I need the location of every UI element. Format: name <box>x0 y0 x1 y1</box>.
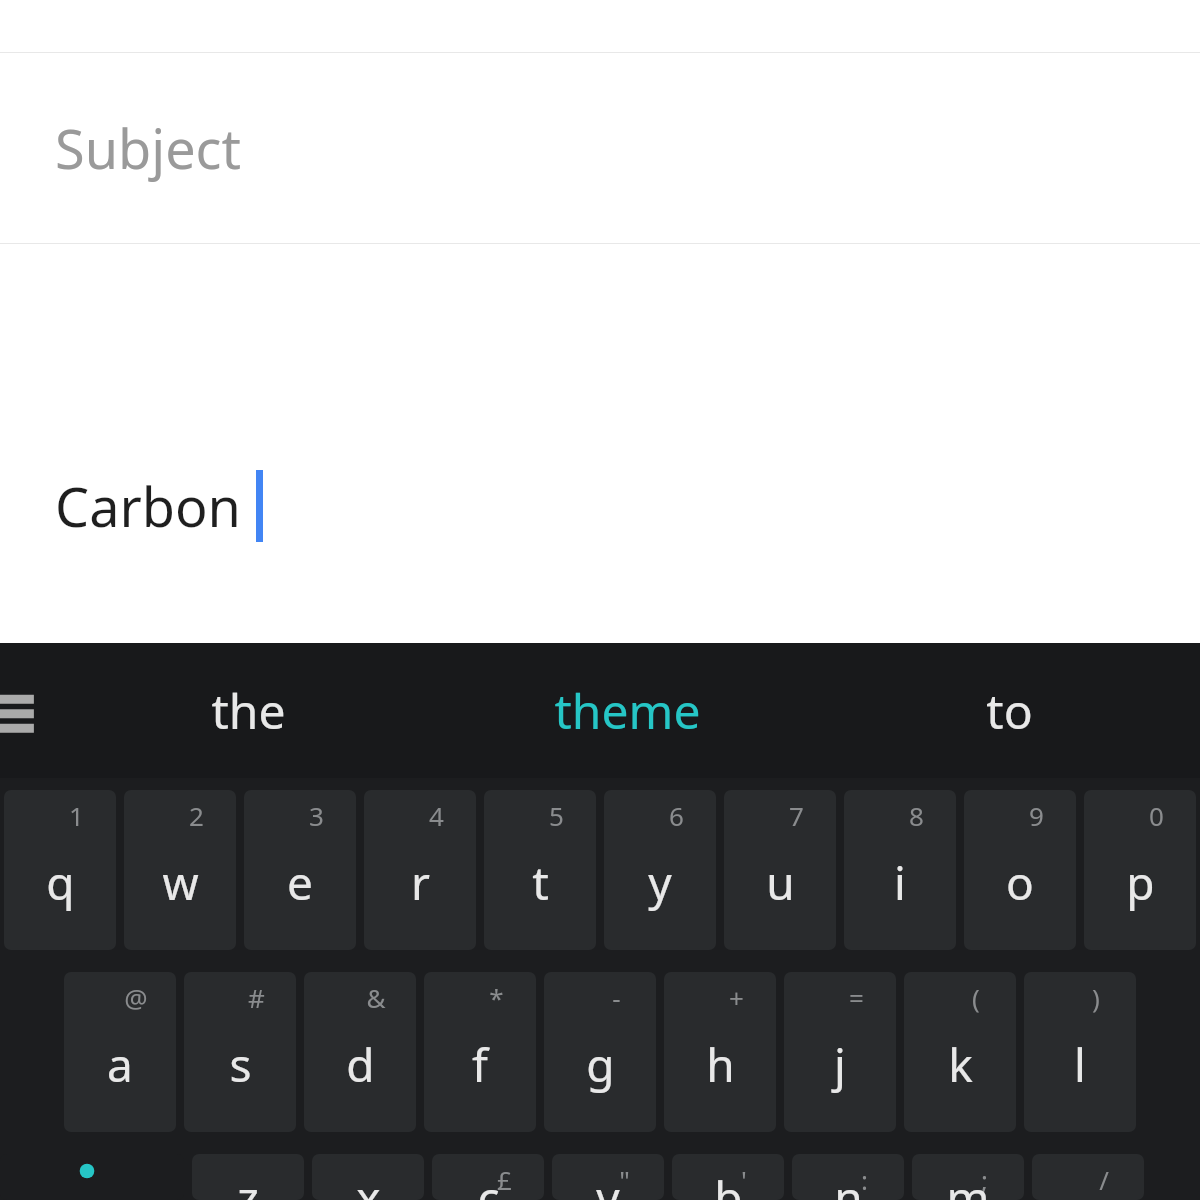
staticText: q <box>46 851 75 914</box>
staticText: e <box>287 851 313 914</box>
button[interactable]: Keyboard menu <box>0 682 42 740</box>
button[interactable]: Subject <box>0 53 1200 243</box>
button[interactable]: " <box>552 1154 664 1200</box>
staticText: w <box>162 851 199 914</box>
staticText: to <box>986 678 1033 743</box>
staticText: 7 <box>789 798 804 833</box>
staticText: " <box>619 1162 630 1197</box>
staticText: f <box>472 1033 488 1096</box>
staticText: p <box>1126 851 1155 914</box>
button[interactable]: 4 <box>364 790 476 950</box>
staticText: 2 <box>189 798 204 833</box>
button[interactable]: * <box>424 972 536 1132</box>
staticText: ; <box>981 1162 988 1197</box>
button[interactable]: x <box>312 1154 424 1200</box>
button[interactable]: + <box>664 972 776 1132</box>
staticText: ' <box>741 1162 747 1197</box>
staticText: v <box>596 1166 620 1200</box>
staticText: @ <box>124 980 148 1015</box>
staticText: £ <box>497 1162 512 1197</box>
staticText: b <box>714 1166 743 1200</box>
button[interactable]: 5 <box>484 790 596 950</box>
staticText: a <box>107 1033 133 1096</box>
staticText: the <box>211 678 286 743</box>
button[interactable]: to <box>818 643 1200 778</box>
button[interactable]: 0 <box>1084 790 1196 950</box>
staticText: + <box>729 980 744 1015</box>
button[interactable]: the <box>60 643 436 778</box>
staticText: h <box>706 1033 735 1096</box>
staticText: = <box>849 980 864 1015</box>
button[interactable]: @ <box>64 972 176 1132</box>
staticText: & <box>366 980 386 1015</box>
staticText: c <box>477 1166 500 1200</box>
staticText: - <box>612 980 621 1015</box>
staticText: t <box>532 851 549 914</box>
staticText: 3 <box>309 798 324 833</box>
button[interactable]: 9 <box>964 790 1076 950</box>
staticText: 4 <box>429 798 444 833</box>
button[interactable]: = <box>784 972 896 1132</box>
staticText: Subject <box>55 111 242 185</box>
button[interactable]: 3 <box>244 790 356 950</box>
button[interactable]: ( <box>904 972 1016 1132</box>
staticText: y <box>648 851 672 914</box>
staticText: theme <box>554 678 701 743</box>
staticText: i <box>894 851 906 914</box>
staticText: z <box>237 1166 259 1200</box>
staticText: # <box>248 980 265 1015</box>
button[interactable]: £ <box>432 1154 544 1200</box>
staticText: ( <box>972 980 980 1015</box>
button[interactable]: Carbon <box>0 244 1200 643</box>
button[interactable]: & <box>304 972 416 1132</box>
staticText: o <box>1006 851 1034 914</box>
staticText: n <box>834 1166 863 1200</box>
button[interactable]: - <box>544 972 656 1132</box>
button[interactable]: 1 <box>4 790 116 950</box>
button[interactable]: ; <box>912 1154 1024 1200</box>
staticText: d <box>346 1033 375 1096</box>
button[interactable]: Shift <box>0 1154 184 1200</box>
staticText: 0 <box>1149 798 1164 833</box>
staticText: u <box>766 851 795 914</box>
staticText: r <box>411 851 430 914</box>
button[interactable]: ) <box>1024 972 1136 1132</box>
staticText: g <box>586 1033 615 1096</box>
staticText: 6 <box>669 798 684 833</box>
button[interactable]: 7 <box>724 790 836 950</box>
button[interactable]: theme <box>436 643 818 778</box>
staticText: j <box>834 1033 846 1096</box>
staticText: l <box>1074 1033 1086 1096</box>
button[interactable]: / <box>1032 1154 1144 1200</box>
staticText: 5 <box>549 798 564 833</box>
button[interactable]: ' <box>672 1154 784 1200</box>
button[interactable]: : <box>792 1154 904 1200</box>
staticText: k <box>948 1033 973 1096</box>
staticText: : <box>861 1162 868 1197</box>
staticText: 9 <box>1029 798 1044 833</box>
button[interactable]: 6 <box>604 790 716 950</box>
button[interactable]: 2 <box>124 790 236 950</box>
button[interactable]: # <box>184 972 296 1132</box>
staticText: m <box>946 1166 990 1200</box>
staticText: 1 <box>69 798 84 833</box>
staticText: ) <box>1092 980 1100 1015</box>
staticText: s <box>229 1033 252 1096</box>
button[interactable]: z <box>192 1154 304 1200</box>
staticText: * <box>489 980 504 1015</box>
staticText: 8 <box>909 798 924 833</box>
button[interactable]: 8 <box>844 790 956 950</box>
staticText: x <box>356 1166 381 1200</box>
staticText: / <box>1099 1162 1109 1197</box>
staticText: Carbon <box>55 469 256 543</box>
